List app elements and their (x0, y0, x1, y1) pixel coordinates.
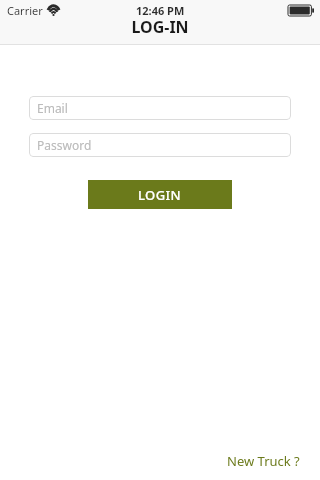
other: Wi-Fi signal (47, 6, 60, 16)
staticText: LOGIN (138, 186, 182, 204)
staticText: 12:46 PM (136, 3, 185, 18)
staticText: New Truck ? (227, 452, 300, 470)
staticText: LOG-IN (131, 16, 189, 38)
button[interactable]: LOGIN (88, 180, 232, 209)
staticText: Password (37, 137, 92, 153)
button[interactable]: Password (29, 133, 291, 157)
staticText: Carrier (7, 3, 43, 18)
button[interactable]: New Truck ? (223, 450, 304, 472)
other: Battery full (288, 5, 314, 16)
staticText: Email (37, 100, 68, 116)
button[interactable]: Email (29, 96, 291, 120)
